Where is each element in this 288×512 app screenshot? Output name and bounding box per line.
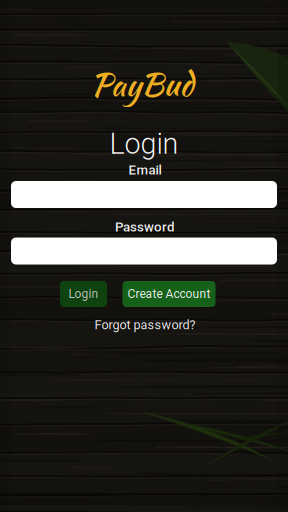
staticText: Create Account xyxy=(127,287,210,301)
staticText: Email xyxy=(128,162,161,178)
staticText: PayBud xyxy=(90,61,193,107)
staticText: Password xyxy=(115,219,175,235)
staticText: Login xyxy=(109,127,178,161)
staticText: Forgot password? xyxy=(94,318,195,332)
button[interactable]: Login xyxy=(60,281,107,307)
staticText: Login xyxy=(68,287,98,301)
button[interactable]: Create Account xyxy=(122,281,215,307)
button[interactable]: Forgot password? xyxy=(94,318,195,332)
